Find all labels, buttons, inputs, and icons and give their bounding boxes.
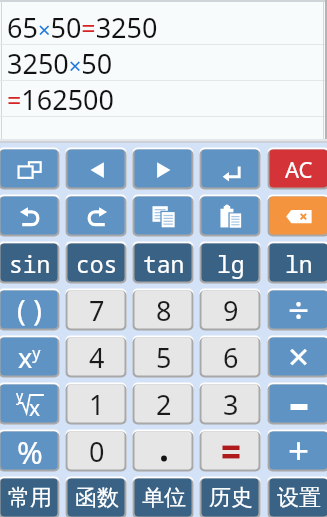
button[interactable]: 2 <box>132 382 194 425</box>
staticText: cos <box>76 248 118 279</box>
button[interactable]: Paste <box>199 194 261 237</box>
staticText: tan <box>143 248 185 279</box>
button[interactable]: Decimal point <box>132 429 194 472</box>
button[interactable]: 5 <box>132 335 194 378</box>
button[interactable]: 设置 <box>267 476 327 517</box>
staticText: 4 <box>89 339 105 376</box>
staticText: ln <box>285 248 313 279</box>
staticText: lg <box>217 248 245 279</box>
button[interactable]: + <box>267 429 327 472</box>
button[interactable]: ln <box>267 241 327 284</box>
button[interactable]: Backspace <box>267 194 327 237</box>
staticText: 9 <box>223 292 239 329</box>
button[interactable]: lg <box>199 241 261 284</box>
staticText: 3 <box>223 386 239 423</box>
staticText: % <box>17 431 43 469</box>
staticText: 6 <box>223 339 239 376</box>
button[interactable]: 6 <box>199 335 261 378</box>
button[interactable]: Undo <box>0 194 60 237</box>
staticText: 设置 <box>277 484 321 512</box>
staticText: 5 <box>156 339 172 376</box>
staticText: ÷ <box>288 283 310 321</box>
staticText: 3250×50 <box>7 45 113 79</box>
button[interactable]: 常用 <box>0 476 60 517</box>
button[interactable]: Redo <box>65 194 127 237</box>
button[interactable]: 函数 <box>65 476 127 517</box>
staticText: xy <box>18 339 41 376</box>
button[interactable]: Equals <box>199 429 261 472</box>
button[interactable]: 单位 <box>132 476 194 517</box>
button[interactable]: cos <box>65 241 127 284</box>
staticText: 单位 <box>142 484 186 512</box>
staticText: 2 <box>156 386 172 423</box>
staticText: 0 <box>89 433 105 470</box>
staticText: x <box>29 394 41 423</box>
staticText: 函数 <box>75 484 119 512</box>
button[interactable]: AC <box>267 147 327 190</box>
button[interactable]: 0 <box>65 429 127 472</box>
button[interactable]: xy <box>0 335 60 378</box>
button[interactable]: ÷ <box>267 288 327 331</box>
staticText: × <box>288 330 310 368</box>
button[interactable]: sin <box>0 241 60 284</box>
staticText: 65×50=3250 <box>7 9 158 43</box>
button[interactable]: ( ) <box>0 288 60 331</box>
button[interactable]: 7 <box>65 288 127 331</box>
button[interactable]: tan <box>132 241 194 284</box>
staticText: 7 <box>89 292 105 329</box>
staticText: y <box>16 386 24 405</box>
staticText: 常用 <box>8 484 52 512</box>
button[interactable]: Minus <box>267 382 327 425</box>
button[interactable]: Move left <box>65 147 127 190</box>
button[interactable]: Move right <box>132 147 194 190</box>
button[interactable]: Enter <box>199 147 261 190</box>
button[interactable]: × <box>267 335 327 378</box>
button[interactable]: 3 <box>199 382 261 425</box>
button[interactable]: 1 <box>65 382 127 425</box>
staticText: sin <box>9 248 51 279</box>
staticText: ( ) <box>17 290 42 328</box>
button[interactable]: % <box>0 429 60 472</box>
button[interactable]: Copy <box>132 194 194 237</box>
staticText: 历史 <box>209 484 253 512</box>
button[interactable]: 4 <box>65 335 127 378</box>
staticText: =162500 <box>7 81 114 115</box>
button[interactable]: 9 <box>199 288 261 331</box>
staticText: 1 <box>89 386 105 423</box>
button[interactable]: Nth root <box>0 382 60 425</box>
button[interactable]: Multi window <box>0 147 60 190</box>
button[interactable]: 8 <box>132 288 194 331</box>
button[interactable]: 历史 <box>199 476 261 517</box>
staticText: + <box>288 424 310 462</box>
staticText: 8 <box>156 292 172 329</box>
staticText: AC <box>285 154 313 184</box>
